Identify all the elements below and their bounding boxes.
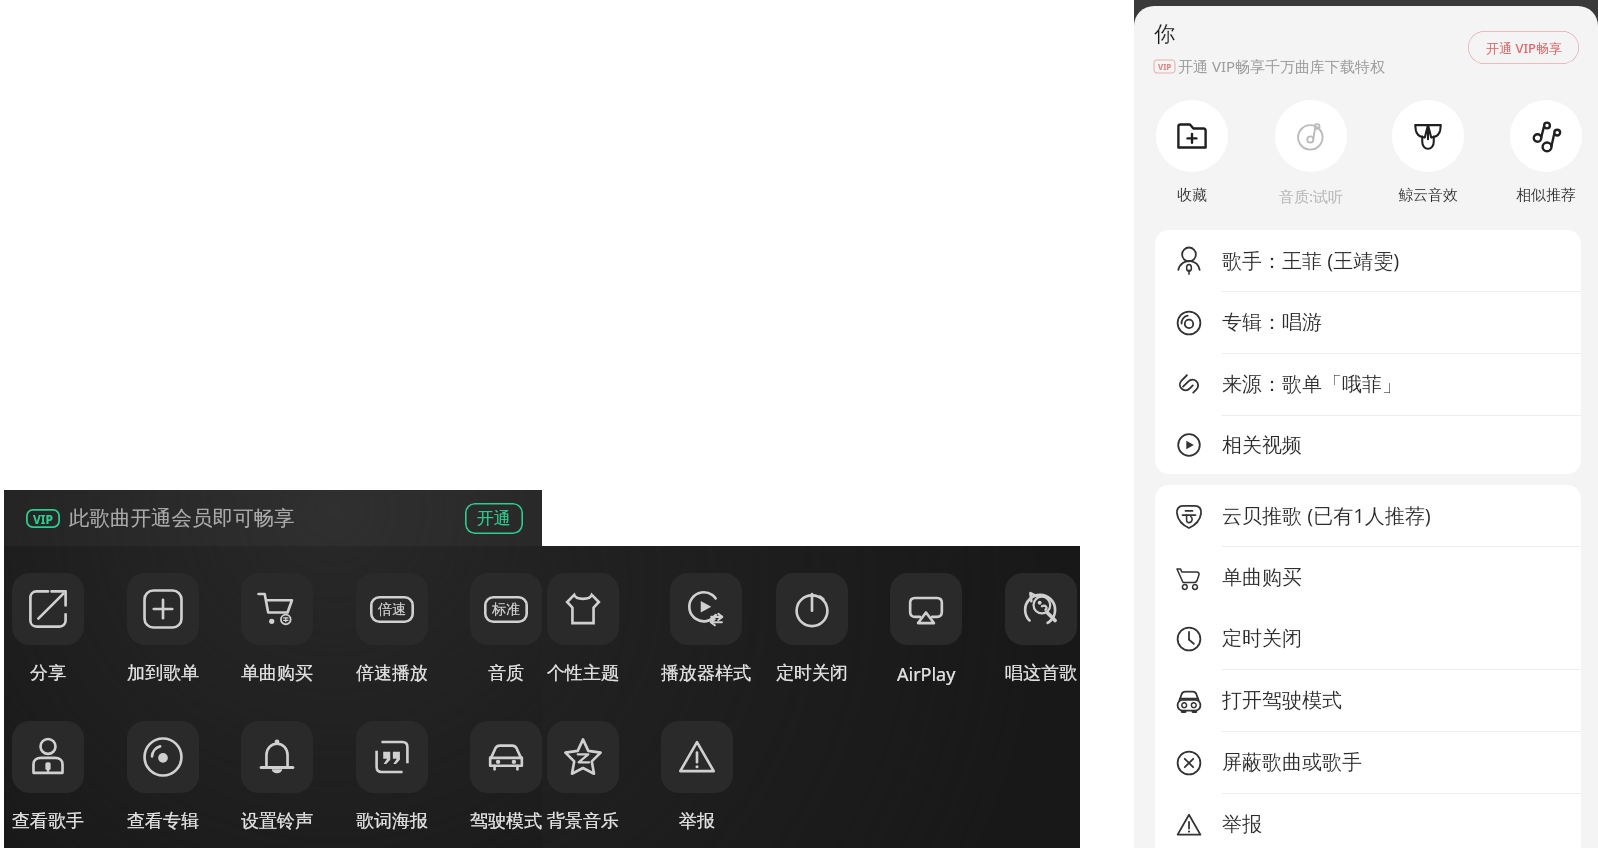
staticText: 你 xyxy=(1154,21,1175,47)
button[interactable]: 相似推荐 xyxy=(1510,100,1582,172)
staticText: VIP xyxy=(1158,61,1172,72)
staticText: 举报 xyxy=(679,810,715,833)
staticText: 屏蔽歌曲或歌手 xyxy=(1222,750,1362,775)
staticText: 倍速 xyxy=(378,601,406,619)
staticText: 收藏 xyxy=(1177,186,1207,205)
staticText: 倍速播放 xyxy=(356,662,428,685)
staticText: 单曲购买 xyxy=(1222,565,1302,590)
button[interactable]: 相关视频 xyxy=(1155,416,1581,474)
staticText: 查看歌手 xyxy=(12,810,84,833)
staticText: 举报 xyxy=(1222,812,1262,837)
staticText: 音质 xyxy=(488,662,524,685)
staticText: 开通 VIP畅享千万曲库下载特权 xyxy=(1178,56,1386,76)
button[interactable]: 个性主题 xyxy=(547,573,619,645)
staticText: 歌词海报 xyxy=(356,810,428,833)
button[interactable]: 专辑：唱游 xyxy=(1155,292,1581,353)
button[interactable]: 背景音乐 xyxy=(547,721,619,793)
staticText: 此歌曲开通会员即可畅享 xyxy=(69,505,295,531)
button[interactable]: 歌手：王菲 (王靖雯) xyxy=(1155,230,1581,291)
button[interactable]: 云贝推歌 (已有1人推荐) xyxy=(1155,485,1581,546)
button[interactable]: 单曲购买 xyxy=(241,573,313,645)
button[interactable]: 音质 xyxy=(470,573,542,645)
staticText: 相关视频 xyxy=(1222,433,1302,458)
staticText: 单曲购买 xyxy=(241,662,313,685)
staticText: 播放器样式 xyxy=(661,662,751,685)
button[interactable]: 查看专辑 xyxy=(127,721,199,793)
staticText: 专辑：唱游 xyxy=(1222,310,1322,335)
staticText: 云贝推歌 (已有1人推荐) xyxy=(1222,502,1431,529)
staticText: 分享 xyxy=(30,662,66,685)
staticText: 标准 xyxy=(492,601,520,619)
button[interactable]: 开通 VIP畅享 xyxy=(1468,31,1579,64)
staticText: 查看专辑 xyxy=(127,810,199,833)
button[interactable]: 播放器样式 xyxy=(670,573,742,645)
button[interactable]: 屏蔽歌曲或歌手 xyxy=(1155,732,1581,793)
button[interactable]: 来源：歌单「哦菲」 xyxy=(1155,354,1581,415)
button[interactable]: 打开驾驶模式 xyxy=(1155,670,1581,731)
button[interactable]: 收藏 xyxy=(1156,100,1228,172)
button[interactable]: 设置铃声 xyxy=(241,721,313,793)
staticText: 定时关闭 xyxy=(776,662,848,685)
button[interactable]: 开通 xyxy=(465,503,523,534)
button[interactable]: 唱这首歌 xyxy=(1005,573,1077,645)
staticText: AirPlay xyxy=(897,662,956,687)
button[interactable]: 驾驶模式 xyxy=(470,721,542,793)
staticText: 驾驶模式 xyxy=(470,810,542,833)
staticText: 开通 VIP畅享 xyxy=(1486,39,1562,57)
staticText: VIP xyxy=(33,511,53,527)
staticText: 设置铃声 xyxy=(241,810,313,833)
staticText: 相似推荐 xyxy=(1516,186,1576,205)
staticText: 打开驾驶模式 xyxy=(1222,688,1342,713)
button[interactable]: 定时关闭 xyxy=(1155,608,1581,669)
staticText: 歌手：王菲 (王靖雯) xyxy=(1222,247,1400,274)
button[interactable]: 单曲购买 xyxy=(1155,547,1581,608)
button[interactable]: 歌词海报 xyxy=(356,721,428,793)
staticText: 开通 xyxy=(477,508,511,529)
button[interactable]: 定时关闭 xyxy=(776,573,848,645)
button[interactable]: 举报 xyxy=(1155,794,1581,848)
staticText: 来源：歌单「哦菲」 xyxy=(1222,372,1402,397)
staticText: 背景音乐 xyxy=(547,810,619,833)
button[interactable]: 倍速播放 xyxy=(356,573,428,645)
staticText: 鲸云音效 xyxy=(1398,186,1458,205)
button[interactable]: 鲸云音效 xyxy=(1392,100,1464,172)
staticText: 加到歌单 xyxy=(127,662,199,685)
staticText: 唱这首歌 xyxy=(1005,662,1077,685)
button[interactable]: 音质:试听 xyxy=(1275,100,1347,172)
staticText: 音质:试听 xyxy=(1279,186,1344,206)
button[interactable]: 加到歌单 xyxy=(127,573,199,645)
staticText: 定时关闭 xyxy=(1222,626,1302,651)
button[interactable]: AirPlay xyxy=(890,573,962,645)
button[interactable]: 分享 xyxy=(12,573,84,645)
staticText: 个性主题 xyxy=(547,662,619,685)
button[interactable]: 查看歌手 xyxy=(12,721,84,793)
button[interactable]: 举报 xyxy=(661,721,733,793)
